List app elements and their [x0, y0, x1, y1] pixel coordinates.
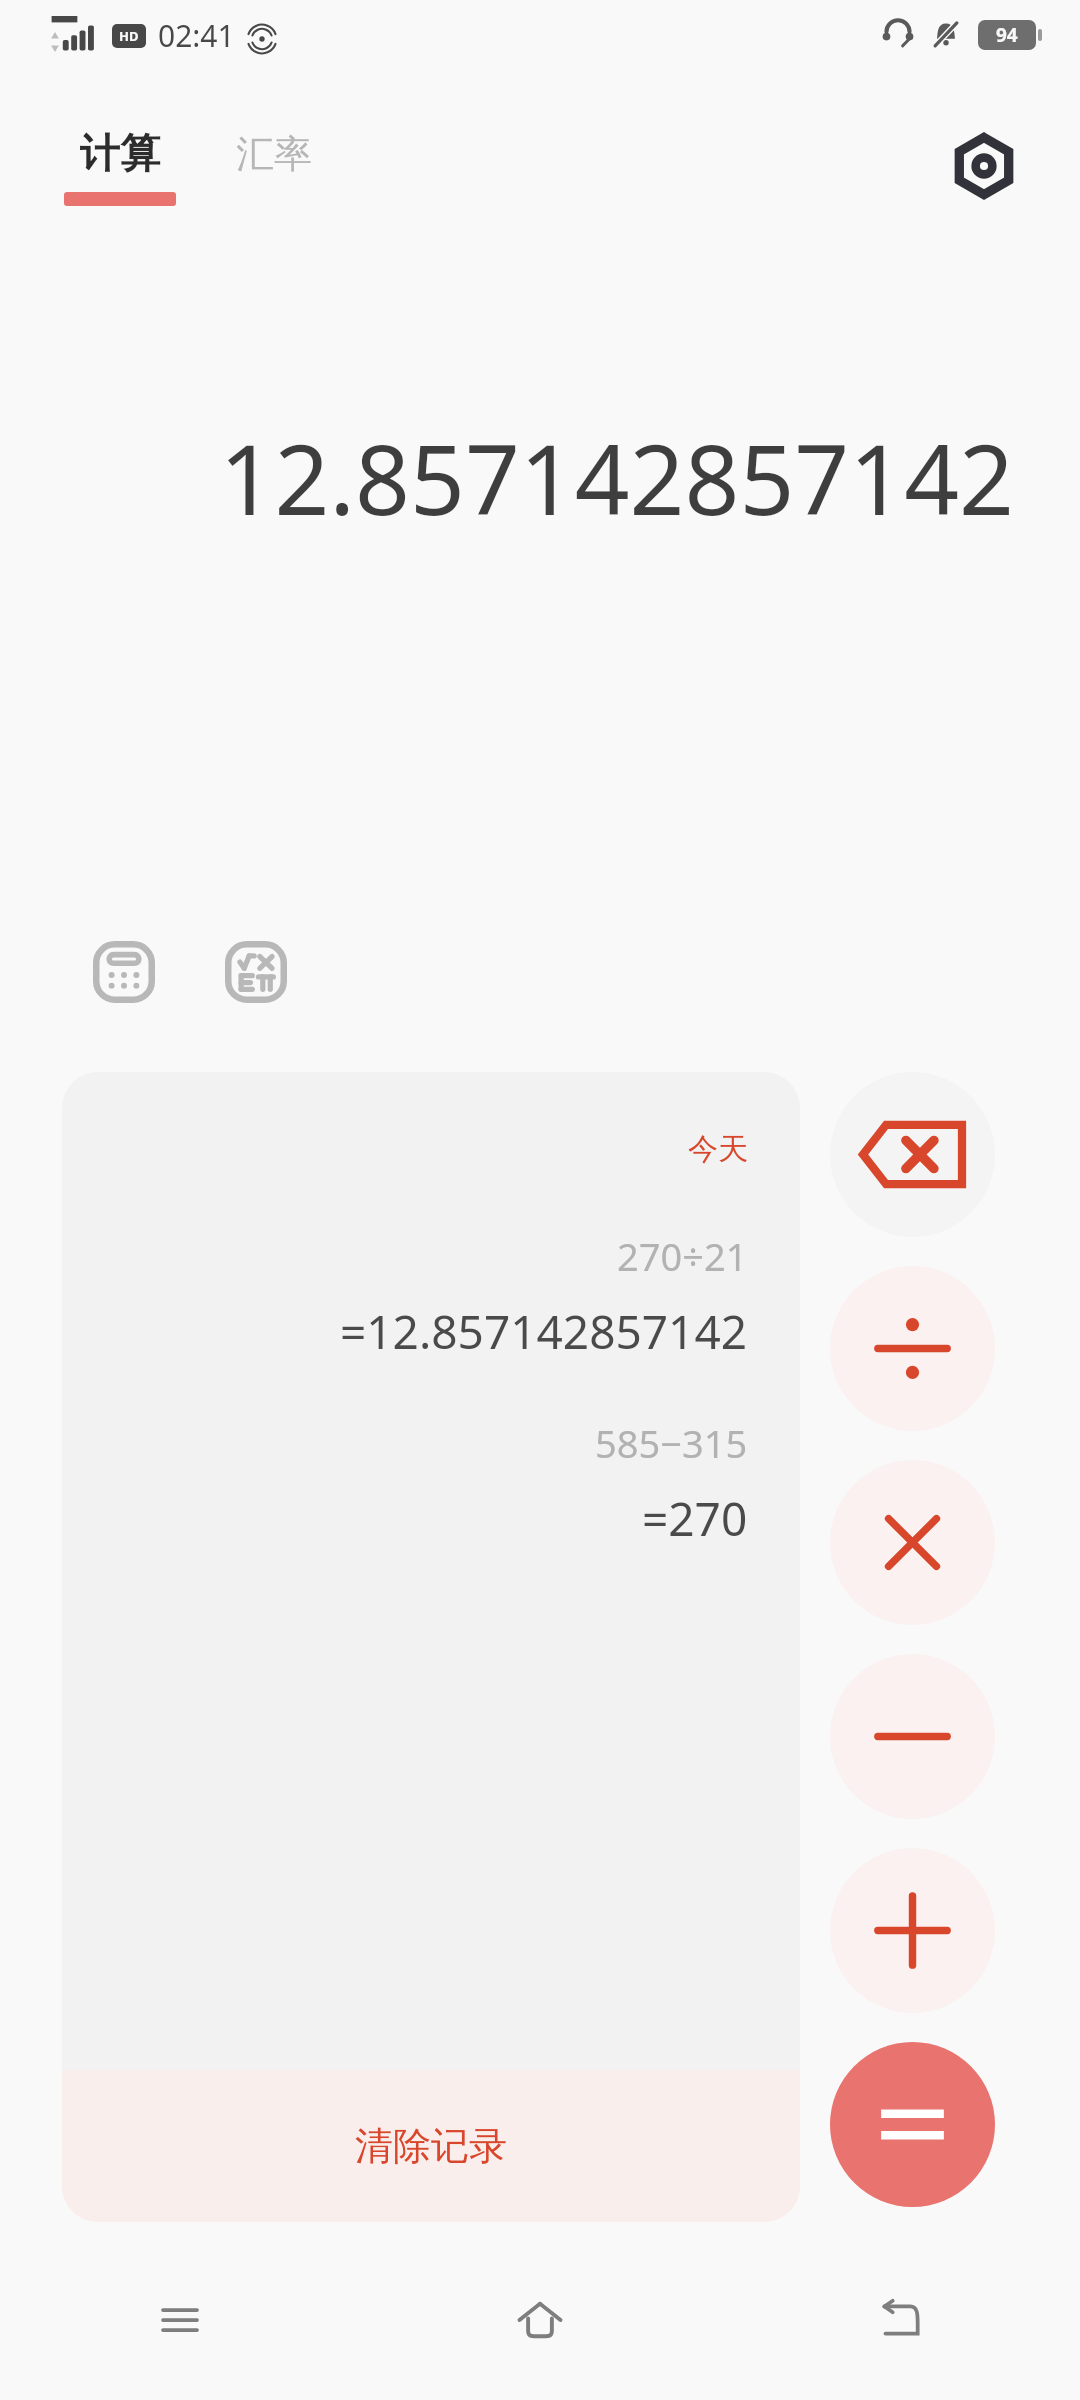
button[interactable]: Multiply — [830, 1460, 995, 1625]
button[interactable]: Scientific calculator — [216, 932, 296, 1012]
button[interactable]: 清除记录 — [62, 2070, 800, 2222]
button[interactable]: 汇率 — [236, 128, 312, 178]
staticText: 清除记录 — [355, 2122, 507, 2170]
staticText: 计算 — [80, 128, 160, 178]
button[interactable]: Plus — [830, 1848, 995, 2013]
staticText: 今天 — [688, 1130, 748, 1168]
button[interactable]: Recents — [0, 2260, 360, 2380]
staticText: =270 — [642, 1487, 748, 1550]
button[interactable]: 计算 — [64, 128, 176, 206]
button[interactable]: Divide — [830, 1266, 995, 1431]
staticText: 汇率 — [236, 130, 312, 178]
staticText: =12.857142857142 — [340, 1300, 748, 1363]
staticText: 270÷21 — [617, 1230, 748, 1282]
button[interactable]: Home — [360, 2260, 720, 2380]
staticText: 94 — [996, 22, 1018, 48]
button[interactable]: Basic calculator — [84, 932, 164, 1012]
button[interactable]: Equals — [830, 2042, 995, 2207]
button[interactable]: Minus — [830, 1654, 995, 1819]
staticText: 02:41 — [158, 15, 235, 56]
button[interactable]: Back — [720, 2260, 1080, 2380]
button[interactable]: Settings — [950, 132, 1018, 200]
staticText: 12.857142857142 — [219, 412, 1014, 543]
staticText: 585−315 — [595, 1417, 748, 1469]
staticText: HD — [119, 27, 139, 45]
button[interactable]: Backspace — [830, 1072, 995, 1237]
